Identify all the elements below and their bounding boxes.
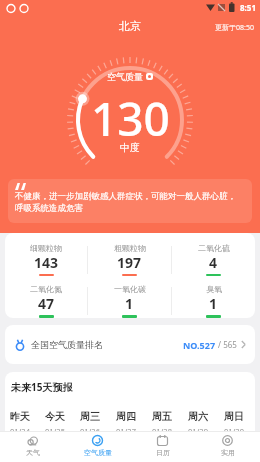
button[interactable]: 今天: [37, 410, 72, 436]
staticText: 中度: [120, 141, 140, 154]
staticText: 130: [91, 87, 170, 150]
staticText: 143: [34, 253, 59, 272]
staticText: 01/29: [188, 426, 208, 436]
staticText: 1: [209, 294, 218, 313]
staticText: 197: [117, 253, 142, 272]
button[interactable]: 粗颗粒物: [88, 243, 171, 276]
staticText: 臭氧: [206, 284, 222, 294]
staticText: 周六: [188, 410, 208, 423]
staticText: 粗颗粒物: [114, 243, 146, 253]
staticText: 空气质量: [107, 71, 143, 82]
staticText: 全国空气质量排名: [31, 339, 103, 350]
staticText: 周三: [80, 410, 100, 423]
button[interactable]: 一氧化碳: [88, 284, 171, 318]
button[interactable]: 空气质量: [65, 432, 130, 462]
button[interactable]: 天气: [0, 432, 65, 462]
button[interactable]: 臭氧: [172, 284, 255, 318]
staticText: 47: [38, 294, 55, 313]
staticText: 01/24: [10, 426, 30, 436]
staticText: 周四: [116, 410, 136, 423]
staticText: 实用: [221, 448, 235, 457]
staticText: 二氧化氮: [30, 284, 62, 294]
staticText: 日历: [156, 448, 170, 457]
staticText: 空气质量: [84, 448, 112, 457]
staticText: 细颗粒物: [30, 243, 62, 253]
staticText: 01/30: [224, 426, 244, 436]
staticText: 更新于08:50: [215, 23, 254, 33]
button[interactable]: 日历: [130, 432, 195, 462]
staticText: 01/28: [152, 426, 172, 436]
staticText: 周日: [224, 410, 244, 423]
staticText: 4: [209, 253, 218, 272]
staticText: 01/27: [116, 426, 136, 436]
button[interactable]: 昨天: [5, 410, 37, 436]
button[interactable]: 全国空气质量排名: [5, 325, 255, 364]
staticText: 二氧化硫: [198, 243, 230, 253]
staticText: 今天: [45, 410, 65, 423]
staticText: 周五: [152, 410, 172, 423]
staticText: 1: [125, 294, 134, 313]
button[interactable]: 周六: [180, 410, 216, 436]
staticText: 昨天: [10, 410, 30, 423]
button[interactable]: 细颗粒物: [5, 243, 87, 276]
button[interactable]: 周四: [108, 410, 144, 436]
staticText: 不健康，进一步加剧敏感人群症状，可能对一般人群心脏， 呼吸系统造成危害: [15, 191, 236, 213]
staticText: 一氧化碳: [114, 284, 146, 294]
button[interactable]: 周五: [144, 410, 180, 436]
staticText: 01/26: [80, 426, 100, 436]
button[interactable]: 二氧化氮: [5, 284, 87, 318]
staticText: 未来15天预报: [11, 380, 73, 394]
staticText: 01/25: [45, 426, 65, 436]
button[interactable]: 周日: [216, 410, 252, 436]
staticText: 天气: [26, 448, 40, 457]
staticText: NO.527: [183, 339, 216, 351]
button[interactable]: 实用: [195, 432, 260, 462]
staticText: 北京: [119, 19, 141, 33]
staticText: 8:51: [240, 2, 256, 13]
staticText: / 565: [216, 339, 237, 350]
button[interactable]: 二氧化硫: [172, 243, 255, 276]
button[interactable]: 周三: [72, 410, 108, 436]
